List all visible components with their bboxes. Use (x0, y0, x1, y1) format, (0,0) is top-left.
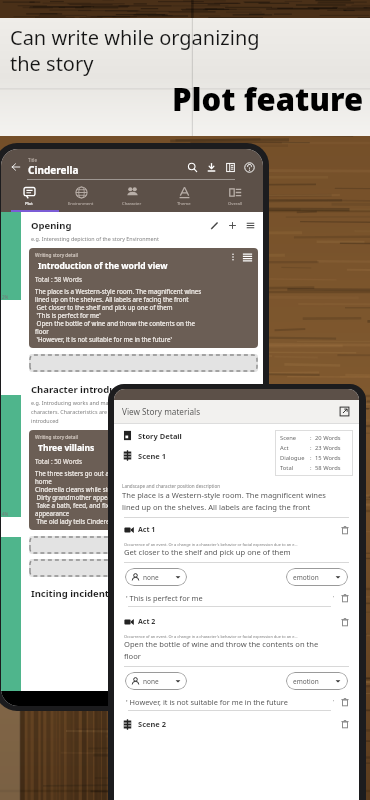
staticText: Landscape and character position descrip… (122, 483, 221, 489)
staticText: Three villains (38, 442, 95, 454)
button[interactable]: none (125, 672, 187, 690)
staticText: e.g. Introducing works and main characte… (31, 399, 114, 424)
button[interactable]: More options (244, 219, 257, 232)
staticText: The place is a Western-style room. The m… (35, 287, 202, 295)
staticText: Writing story detail (35, 252, 78, 259)
staticText: Scene 2 (138, 719, 339, 729)
staticText: Dialogue (280, 454, 310, 462)
staticText: Total : 50 Words (35, 457, 83, 466)
staticText: floor (35, 327, 49, 335)
staticText: ' (333, 699, 335, 706)
button[interactable]: none (125, 568, 187, 586)
staticText: : (310, 464, 312, 472)
staticText: : (310, 444, 312, 452)
staticText: appearance (35, 509, 70, 517)
staticText: View Story materials (122, 406, 338, 417)
staticText: Character (122, 201, 142, 207)
staticText: 'However, it is not suitable for me in t… (35, 335, 172, 343)
button[interactable]: Delete dialogue (339, 592, 351, 604)
button[interactable]: Scene 2 (122, 718, 351, 730)
staticText: Total (280, 464, 310, 472)
button[interactable]: Edit (208, 219, 221, 232)
staticText: Get closer to the shelf and pick up one … (35, 303, 173, 311)
staticText: 15 Words (315, 454, 341, 462)
staticText: Theme (177, 201, 191, 207)
button[interactable]: Delete Scene 2 (339, 718, 351, 730)
staticText: ' This is perfect for me (126, 593, 333, 603)
staticText: Scene 1 (138, 451, 167, 461)
staticText: Environment (68, 201, 94, 207)
button[interactable]: More options (244, 383, 257, 396)
staticText: none (143, 573, 175, 582)
staticText: home (35, 477, 52, 485)
button[interactable]: Writing story detail (29, 430, 258, 530)
button[interactable]: Story Detail (122, 430, 182, 441)
staticText: 4% (2, 511, 9, 517)
staticText: Occurrence of an event. Or a change in a… (124, 634, 298, 639)
staticText: Cinderella (28, 163, 79, 177)
staticText: Open the bottle of wine and throw the co… (124, 639, 319, 661)
staticText: Cinderella cleans while singing (35, 485, 125, 493)
staticText: Get closer to the shelf and pick up one … (124, 547, 291, 557)
staticText: Overall (228, 201, 242, 207)
staticText: Title (28, 157, 37, 163)
staticText: Act (280, 444, 310, 452)
staticText: Act 2 (138, 617, 339, 627)
button[interactable]: Plot (5, 186, 53, 207)
button[interactable]: Delete Act 2 (339, 616, 351, 628)
button[interactable]: Add (226, 219, 239, 232)
staticText: Open the bottle of wine and throw the co… (35, 319, 195, 327)
button[interactable] (29, 559, 258, 577)
button[interactable]: Overall (211, 186, 259, 207)
button[interactable]: Scene 1 (122, 450, 167, 461)
button[interactable]: Add (226, 383, 239, 396)
staticText: 20 Words (315, 434, 341, 442)
button[interactable]: Writing story detail (29, 248, 258, 348)
staticText: Scene (280, 434, 310, 442)
staticText: 23 Words (315, 444, 341, 452)
button[interactable]: Act 2 (124, 616, 351, 628)
button[interactable]: Act 1 (124, 524, 351, 536)
staticText: Writing story detail (35, 434, 78, 441)
staticText: Plot (25, 201, 33, 207)
staticText: Dirty grandmother appears (35, 493, 117, 501)
staticText: Occurrence of an event. Or a change in a… (124, 542, 298, 547)
staticText: Can write while organizing the story (10, 24, 260, 76)
button[interactable]: Theme (160, 186, 208, 207)
staticText: emotion (293, 677, 335, 686)
staticText: The place is a Western-style room. The m… (122, 490, 326, 512)
button[interactable]: Environment (57, 186, 105, 207)
button[interactable]: Download (203, 159, 220, 176)
staticText: lined up on the shelves. All labels are … (35, 295, 189, 303)
staticText: e.g. Interesting depiction of the story … (31, 235, 159, 242)
button[interactable]: emotion (286, 568, 348, 586)
staticText: : (310, 454, 312, 462)
staticText: Plot feature (172, 78, 364, 120)
staticText: The three sisters go out and Cinderella … (35, 469, 172, 477)
button[interactable]: Back (7, 158, 25, 176)
button[interactable]: Help (241, 159, 258, 176)
staticText: Story Detail (138, 431, 182, 441)
staticText: emotion (293, 573, 335, 582)
button[interactable]: emotion (286, 672, 348, 690)
button[interactable]: Delete dialogue (339, 696, 351, 708)
staticText: Character introduction (31, 383, 208, 396)
staticText: Inciting incident (31, 587, 109, 600)
button[interactable]: Delete Act 1 (339, 524, 351, 536)
button[interactable] (29, 536, 258, 554)
staticText: ' (333, 595, 335, 602)
staticText: Total : 58 Words (35, 275, 83, 284)
staticText: 2% (2, 294, 9, 300)
staticText: 58 Words (315, 464, 341, 472)
button[interactable]: Library (222, 159, 239, 176)
button[interactable]: Character (108, 186, 156, 207)
button[interactable] (29, 354, 258, 372)
staticText: ' However, it is not suitable for me in … (126, 697, 333, 707)
button[interactable]: Search (184, 159, 201, 176)
staticText: 'This is perfect for me' (35, 311, 101, 319)
staticText: Act 1 (138, 525, 339, 535)
button[interactable]: Open externally (338, 405, 351, 418)
staticText: The old lady tells Cinderella about the … (35, 517, 158, 525)
button[interactable]: Edit (208, 383, 221, 396)
staticText: Introduction of the world view (38, 260, 168, 272)
